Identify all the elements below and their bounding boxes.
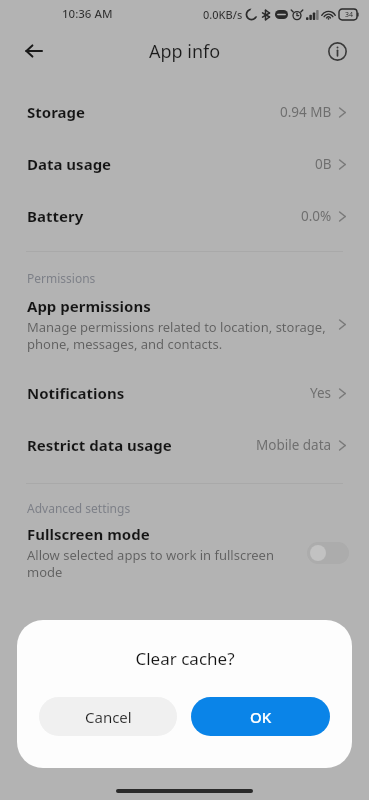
staticText: Notifications xyxy=(27,383,125,403)
button[interactable]: Back xyxy=(14,31,54,71)
button[interactable]: Cancel xyxy=(39,697,177,736)
button[interactable]: App permissions xyxy=(0,294,369,357)
staticText: Clear cache? xyxy=(135,647,235,670)
staticText: 0.0KB/s xyxy=(203,7,243,22)
staticText: 0B xyxy=(315,155,332,173)
staticText: App permissions xyxy=(27,296,151,316)
button[interactable]: Fullscreen mode xyxy=(0,522,369,581)
staticText: 0.0% xyxy=(301,207,332,225)
staticText: Advanced settings xyxy=(27,500,131,516)
button[interactable]: Storage xyxy=(0,86,369,138)
staticText: Data usage xyxy=(27,154,112,174)
staticText: Restrict data usage xyxy=(27,435,172,455)
staticText: 0.94 MB xyxy=(280,103,332,121)
staticText: OK xyxy=(250,707,272,727)
button[interactable]: Restrict data usage xyxy=(0,419,369,471)
staticText: Allow selected apps to work in fullscree… xyxy=(27,546,274,581)
staticText: Battery xyxy=(27,206,84,226)
staticText: Mobile data xyxy=(256,436,332,454)
button[interactable]: About xyxy=(317,31,357,71)
staticText: Yes xyxy=(310,384,332,402)
button[interactable]: OK xyxy=(191,697,330,736)
staticText: Fullscreen mode xyxy=(27,524,150,544)
button[interactable]: Notifications xyxy=(0,367,369,419)
staticText: Manage permissions related to location, … xyxy=(27,318,326,353)
staticText: Storage xyxy=(27,102,85,122)
button[interactable]: Battery xyxy=(0,190,369,242)
staticText: Permissions xyxy=(27,270,96,286)
staticText: Cancel xyxy=(85,707,132,727)
staticText: 10:36 AM xyxy=(62,6,113,22)
button[interactable]: Data usage xyxy=(0,138,369,190)
staticText: 34 xyxy=(345,10,354,20)
staticText: App info xyxy=(149,39,221,64)
button[interactable]: Fullscreen mode toggle xyxy=(307,542,349,564)
